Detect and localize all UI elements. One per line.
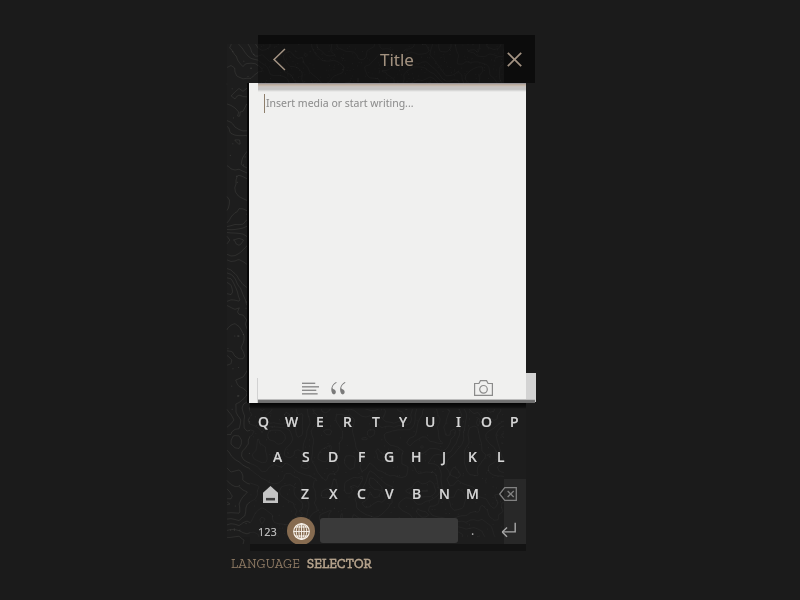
button[interactable]: A [264,440,291,472]
button[interactable]: B [403,477,430,509]
button[interactable]: G [376,440,403,472]
button[interactable]: O [473,405,500,437]
button[interactable]: D [320,440,347,472]
staticText: P [510,412,519,431]
staticText: K [468,447,477,466]
button[interactable]: P [501,405,528,437]
staticText: H [411,447,422,466]
button[interactable]: . [462,517,484,543]
button[interactable]: Q [250,405,277,437]
staticText: N [439,484,450,503]
button[interactable]: Formatting [297,375,323,401]
staticText: Y [399,412,408,431]
staticText: R [343,412,352,431]
button[interactable]: R [334,405,361,437]
button[interactable]: Back [258,35,300,83]
staticText: I [456,412,461,431]
staticText: F [358,447,366,466]
button[interactable]: F [348,440,375,472]
staticText: C [357,484,366,503]
staticText: G [384,447,395,466]
staticText: V [385,484,394,503]
button[interactable]: Backspace [491,478,524,510]
staticText: W [285,412,299,431]
button[interactable]: W [278,405,305,437]
button[interactable]: T [362,405,389,437]
staticText: Insert media or start writing... [266,96,414,110]
button[interactable]: Quote [325,375,351,401]
button[interactable]: Shift [254,478,286,510]
button[interactable]: Language selector [287,517,315,545]
button[interactable]: L [487,440,514,472]
staticText: Title [380,48,414,71]
button[interactable]: K [459,440,486,472]
staticText: S [302,447,310,466]
button[interactable]: N [431,477,458,509]
button[interactable]: Y [390,405,417,437]
staticText: A [273,447,283,466]
staticText: T [372,412,380,431]
staticText: J [442,447,447,466]
button[interactable]: S [292,440,319,472]
button[interactable]: Z [292,477,319,509]
staticText: E [316,412,324,431]
staticText: Z [301,484,310,503]
staticText: M [466,484,479,503]
button[interactable]: M [459,477,486,509]
button[interactable]: V [376,477,403,509]
staticText: X [329,484,338,503]
button[interactable]: C [348,477,375,509]
button[interactable]: E [306,405,333,437]
button[interactable]: Camera [470,375,496,401]
button[interactable]: Close [493,35,535,83]
staticText: . [471,522,475,538]
staticText: Q [258,412,269,431]
button[interactable]: H [403,440,430,472]
staticText: L [497,447,505,466]
button[interactable]: U [417,405,444,437]
button[interactable]: Enter [492,516,524,544]
staticText: D [328,447,339,466]
staticText: B [412,484,422,503]
staticText: U [425,412,436,431]
button[interactable]: J [431,440,458,472]
staticText: SELECTOR [307,556,372,572]
button[interactable]: 123 [252,517,282,545]
button[interactable]: X [320,477,347,509]
staticText: LANGUAGE [231,556,301,572]
staticText: 123 [258,524,277,539]
staticText: O [481,412,492,431]
button[interactable]: I [445,405,472,437]
